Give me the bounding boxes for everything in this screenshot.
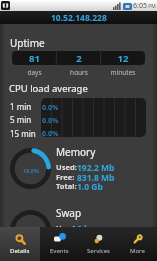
staticText: Total: <box>56 181 77 191</box>
staticText: Free: <box>56 172 75 182</box>
staticText: days <box>12 68 57 77</box>
staticText: 831.8 Mb <box>77 172 115 184</box>
staticText: 15 min <box>10 128 36 139</box>
staticText: minutes <box>101 68 145 77</box>
staticText: 81 <box>12 52 57 65</box>
staticText: Used: <box>56 223 77 233</box>
staticText: 18.8% <box>23 167 39 174</box>
staticText: CPU load average <box>9 82 88 95</box>
staticText: Uptime <box>10 36 45 50</box>
staticText: 0.0% <box>42 129 59 139</box>
staticText: 10.52.148.228 <box>51 12 107 24</box>
staticText: Details <box>10 247 30 255</box>
staticText: 0.0% <box>42 116 59 126</box>
staticText: Events <box>50 247 69 255</box>
staticText: 1.0 Gb <box>77 181 103 193</box>
staticText: More <box>130 247 145 255</box>
staticText: 2 <box>57 52 101 65</box>
staticText: 0 b <box>77 223 90 235</box>
staticText: 0.0% <box>42 103 59 113</box>
button[interactable]: Events <box>40 227 79 261</box>
other: Details <box>15 234 26 245</box>
staticText: Swap <box>56 206 82 220</box>
button[interactable]: Details <box>0 227 40 261</box>
button[interactable]: More <box>118 227 157 261</box>
staticText: 192.2 Mb <box>77 162 115 174</box>
staticText: 6:05 <box>133 1 147 11</box>
staticText: 5 min <box>10 114 32 125</box>
staticText: 12 <box>101 52 145 65</box>
staticText: hours <box>57 68 101 77</box>
staticText: Memory <box>56 145 96 159</box>
staticText: PM <box>147 3 156 10</box>
other: More <box>132 234 143 245</box>
staticText: 1 min <box>10 101 32 112</box>
other: Services <box>93 234 104 245</box>
other: Events <box>54 234 65 245</box>
button[interactable]: Services <box>79 227 118 261</box>
staticText: Services <box>87 247 110 255</box>
staticText: Used: <box>56 162 77 172</box>
